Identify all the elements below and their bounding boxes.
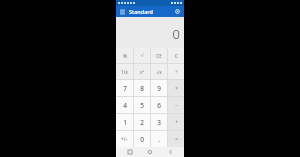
button[interactable]: Home: [143, 147, 157, 157]
button[interactable]: +/−: [116, 131, 133, 147]
staticText: 6: [157, 101, 161, 110]
staticText: C: [175, 53, 178, 59]
staticText: −: [175, 102, 178, 108]
staticText: 4: [123, 101, 127, 110]
button[interactable]: Open navigation menu: [119, 8, 126, 15]
button[interactable]: C: [168, 48, 184, 63]
staticText: √: [141, 53, 144, 58]
button[interactable]: √x: [151, 64, 167, 79]
button[interactable]: 5: [134, 97, 150, 113]
staticText: ÷: [175, 69, 178, 75]
staticText: 0: [172, 25, 180, 43]
staticText: 5: [140, 101, 144, 110]
button[interactable]: Back: [164, 147, 178, 157]
staticText: 8: [140, 84, 144, 93]
button[interactable]: 4: [116, 97, 133, 113]
button[interactable]: %: [116, 48, 133, 63]
staticText: 1/x: [121, 69, 128, 75]
button[interactable]: 3: [151, 114, 167, 130]
button[interactable]: 0: [134, 131, 150, 147]
staticText: √x: [156, 69, 162, 75]
button[interactable]: 2: [134, 114, 150, 130]
button[interactable]: +: [168, 114, 184, 130]
staticText: +/−: [121, 136, 128, 142]
staticText: x²: [140, 69, 144, 75]
button[interactable]: 6: [151, 97, 167, 113]
button[interactable]: 9: [151, 80, 167, 96]
button[interactable]: 1/x: [116, 64, 133, 79]
staticText: =: [175, 136, 178, 142]
staticText: 3: [157, 118, 161, 127]
button[interactable]: 1: [116, 114, 133, 130]
staticText: 9: [157, 84, 161, 93]
staticText: 1: [123, 118, 127, 127]
button[interactable]: 8: [134, 80, 150, 96]
button[interactable]: Settings: [174, 8, 181, 15]
button[interactable]: .: [151, 131, 167, 147]
staticText: 7: [123, 84, 127, 93]
button[interactable]: x²: [134, 64, 150, 79]
button[interactable]: ×: [168, 80, 184, 96]
staticText: Standard: [129, 8, 174, 15]
button[interactable]: ÷: [168, 64, 184, 79]
staticText: .: [158, 135, 160, 144]
staticText: +: [175, 119, 178, 125]
staticText: 0: [140, 135, 144, 144]
button[interactable]: CE: [151, 48, 167, 63]
staticText: CE: [156, 53, 162, 59]
button[interactable]: Recent apps: [123, 147, 137, 157]
staticText: %: [123, 53, 127, 59]
staticText: 2: [140, 118, 144, 127]
button[interactable]: −: [168, 97, 184, 113]
button[interactable]: =: [168, 131, 184, 147]
button[interactable]: 7: [116, 80, 133, 96]
button[interactable]: √: [134, 48, 150, 63]
staticText: ×: [175, 85, 178, 91]
